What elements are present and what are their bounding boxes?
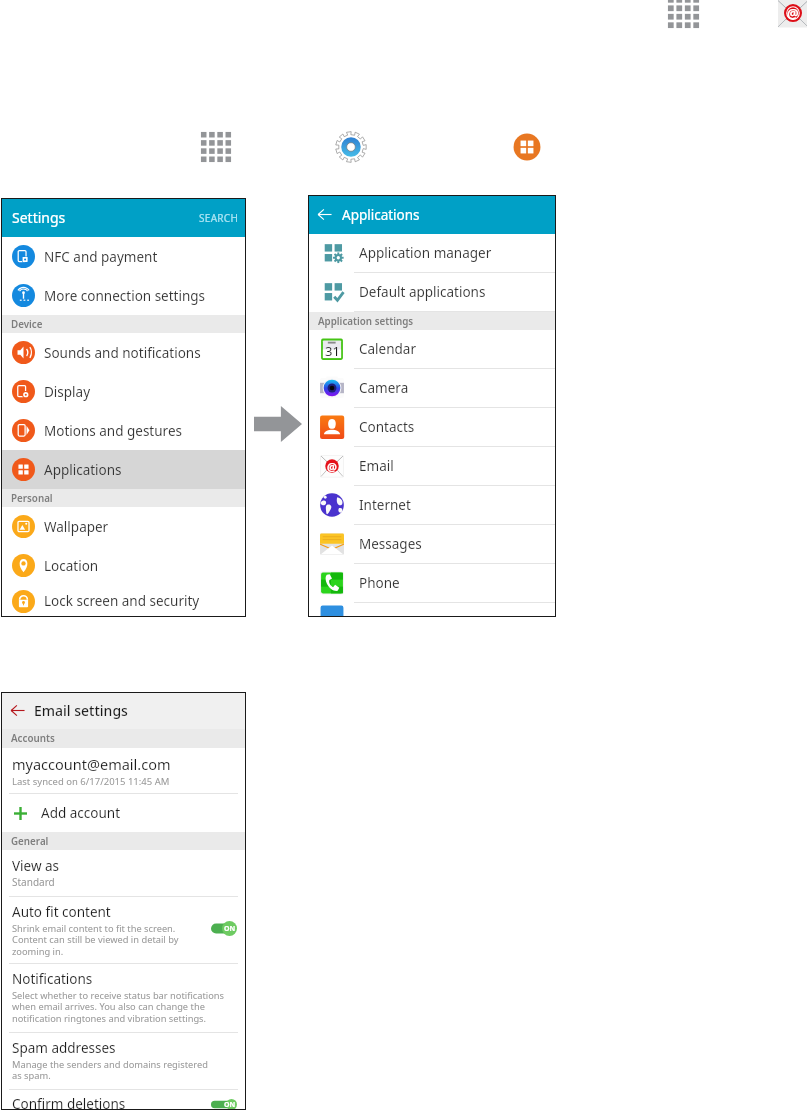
staticText: Select whether to receive status bar not… <box>12 989 242 1025</box>
staticText: Location <box>44 557 99 575</box>
button[interactable]: Confirm deletions <box>1 1090 246 1110</box>
staticText: Application manager <box>359 244 492 262</box>
staticText: Shrink email content to fit the screen. … <box>12 922 182 958</box>
button[interactable]: ON <box>211 1099 237 1110</box>
staticText: Internet <box>359 496 411 514</box>
button[interactable]: Apps <box>668 0 699 28</box>
staticText: Sounds and notifications <box>44 344 201 362</box>
button[interactable]: Messages <box>308 525 556 563</box>
staticText: Phone <box>359 574 400 592</box>
button[interactable]: 31 <box>308 330 556 368</box>
button[interactable]: @ <box>308 447 556 485</box>
button[interactable]: Applications <box>1 450 246 489</box>
staticText: More connection settings <box>44 287 206 305</box>
button[interactable] <box>308 603 556 617</box>
staticText: Contacts <box>359 418 415 436</box>
staticText: Device <box>11 318 43 331</box>
staticText: 31 <box>325 342 340 360</box>
button[interactable]: Motions and gestures <box>1 411 246 450</box>
staticText: Standard <box>12 875 55 889</box>
staticText: Email <box>359 457 394 475</box>
staticText: Auto fit content <box>12 903 111 921</box>
button[interactable]: Settings <box>335 131 367 163</box>
staticText: Email settings <box>34 701 128 720</box>
button[interactable]: ON <box>211 921 237 936</box>
staticText: Camera <box>359 379 409 397</box>
staticText: Notifications <box>12 970 93 988</box>
button[interactable]: Phone <box>308 564 556 602</box>
staticText: Personal <box>11 492 53 505</box>
staticText: ON <box>224 1100 236 1110</box>
staticText: Motions and gestures <box>44 422 182 440</box>
button[interactable]: Email settings <box>1 692 246 729</box>
button[interactable]: Application manager <box>308 234 556 272</box>
staticText: NFC and payment <box>44 248 158 266</box>
staticText: Settings <box>12 208 66 227</box>
button[interactable]: Add account <box>1 794 246 832</box>
staticText: Calendar <box>359 340 416 358</box>
staticText: Display <box>44 383 91 401</box>
button[interactable]: View as <box>1 850 246 896</box>
button[interactable]: Applications <box>308 195 556 234</box>
button[interactable]: Sounds and notifications <box>1 333 246 372</box>
staticText: Applications <box>44 461 122 479</box>
staticText: Add account <box>41 804 121 822</box>
staticText: Wallpaper <box>44 518 109 536</box>
button[interactable]: Contacts <box>308 408 556 446</box>
button[interactable]: Notifications <box>1 964 246 1032</box>
button[interactable]: Apps <box>201 132 231 162</box>
staticText: Confirm deletions <box>12 1095 126 1110</box>
button[interactable]: Location <box>1 546 246 585</box>
button[interactable]: Camera <box>308 369 556 407</box>
button[interactable]: Internet <box>308 486 556 524</box>
button[interactable]: More connection settings <box>1 276 246 315</box>
button[interactable]: Spam addresses <box>1 1033 246 1089</box>
staticText: @ <box>787 4 799 22</box>
staticText: myaccount@email.com <box>12 754 171 774</box>
button[interactable]: Lock screen and security <box>1 585 246 617</box>
button[interactable]: Default applications <box>308 273 556 311</box>
staticText: @ <box>327 459 337 474</box>
button[interactable]: Wallpaper <box>1 507 246 546</box>
button[interactable]: Email <box>778 0 807 29</box>
staticText: Manage the senders and domains registere… <box>12 1058 216 1082</box>
button[interactable]: NFC and payment <box>1 237 246 276</box>
staticText: Default applications <box>359 283 486 301</box>
button[interactable]: myaccount@email.com <box>1 748 246 793</box>
staticText: Lock screen and security <box>44 592 200 610</box>
staticText: Last synced on 6/17/2015 11:45 AM <box>12 775 170 788</box>
staticText: SEARCH <box>199 211 239 225</box>
staticText: ON <box>224 924 236 934</box>
staticText: Messages <box>359 535 422 553</box>
staticText: Accounts <box>11 732 55 745</box>
staticText: View as <box>12 857 60 875</box>
button[interactable]: Display <box>1 372 246 411</box>
staticText: Spam addresses <box>12 1039 116 1057</box>
staticText: General <box>11 835 49 848</box>
staticText: Application settings <box>318 315 414 328</box>
button[interactable]: Auto fit content <box>1 897 246 963</box>
button[interactable]: Settings <box>1 198 246 237</box>
button[interactable]: Applications <box>513 133 541 161</box>
staticText: Applications <box>342 206 420 224</box>
